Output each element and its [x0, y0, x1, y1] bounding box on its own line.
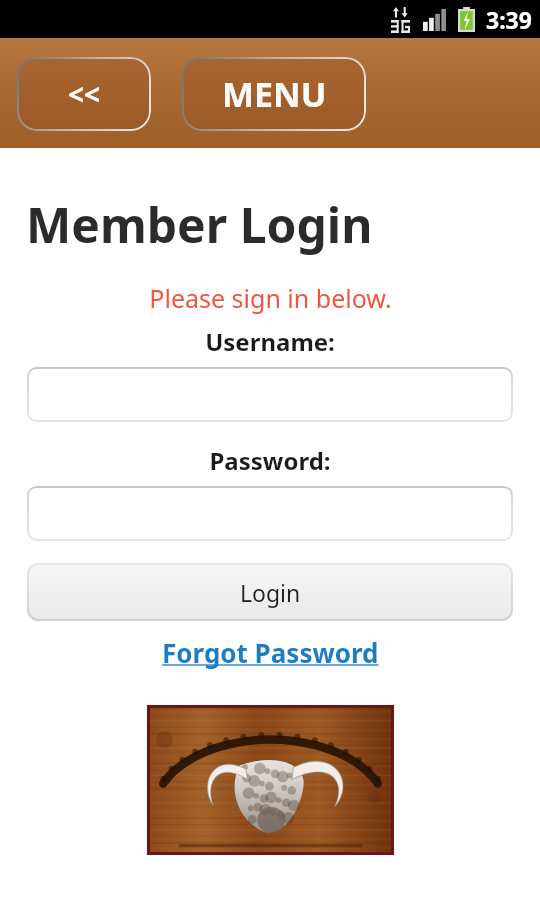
button[interactable]: Login — [27, 563, 513, 621]
staticText: Password: — [209, 444, 331, 477]
staticText: << — [68, 75, 101, 113]
button[interactable]: MENU — [182, 57, 366, 131]
staticText: Forgot Password — [162, 635, 379, 670]
button[interactable]: Chamber of Commerce logo — [147, 705, 394, 855]
button[interactable] — [27, 367, 513, 422]
staticText: Username: — [205, 325, 335, 358]
staticText: Please sign in below. — [149, 281, 392, 315]
button[interactable] — [27, 486, 513, 541]
staticText: Login — [240, 577, 301, 608]
button[interactable]: Back — [17, 57, 151, 131]
staticText: MENU — [222, 71, 327, 117]
staticText: 3:39 — [486, 4, 532, 35]
button[interactable]: Forgot Password — [156, 633, 385, 672]
staticText: Member Login — [26, 192, 373, 257]
